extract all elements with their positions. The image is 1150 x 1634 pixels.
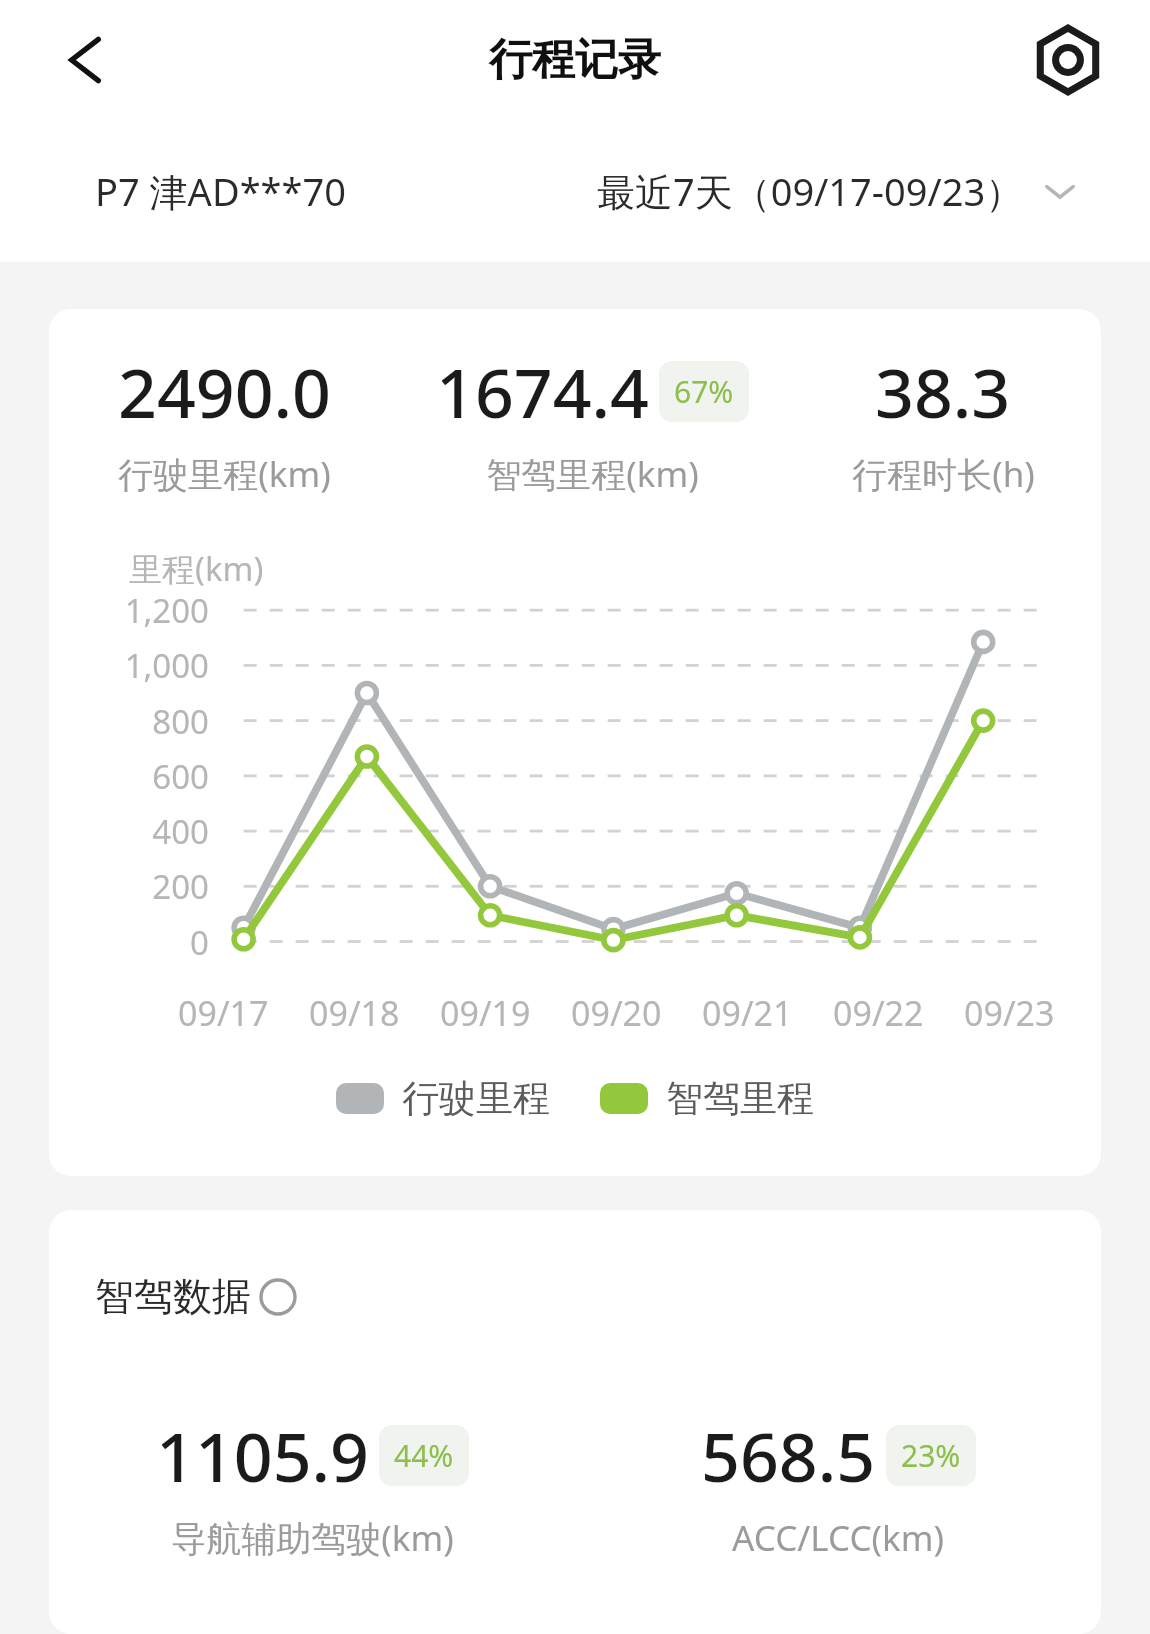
staticText: 行程时长(h): [852, 450, 1035, 498]
staticText: 1674.4: [436, 345, 649, 438]
staticText: 智驾里程: [666, 1075, 814, 1122]
staticText: 400: [49, 809, 209, 854]
staticText: 09/21: [702, 990, 793, 1036]
button[interactable]: 智驾数据: [95, 1272, 297, 1321]
staticText: 09/17: [178, 990, 269, 1036]
staticText: 0: [49, 920, 209, 965]
staticText: 67%: [674, 371, 734, 412]
staticText: 1,000: [49, 643, 209, 688]
other: Info: [259, 1278, 297, 1316]
staticText: 行程记录: [489, 33, 661, 87]
staticText: 200: [49, 864, 209, 909]
staticText: 09/19: [440, 990, 531, 1036]
staticText: P7 津AD***70: [95, 165, 346, 217]
staticText: 600: [49, 754, 209, 799]
staticText: 行驶里程(km): [118, 450, 331, 498]
staticText: 568.5: [701, 1409, 876, 1502]
staticText: 1105.9: [156, 1409, 369, 1502]
staticText: 里程(km): [129, 546, 264, 591]
staticText: 智驾里程(km): [486, 450, 699, 498]
staticText: 1,200: [49, 588, 209, 633]
staticText: 800: [49, 699, 209, 744]
staticText: 2490.0: [118, 345, 331, 438]
staticText: 最近7天（09/17-09/23）: [597, 165, 1024, 217]
staticText: 导航辅助驾驶(km): [171, 1514, 454, 1562]
staticText: 09/20: [571, 990, 662, 1036]
staticText: 09/18: [309, 990, 400, 1036]
staticText: 行驶里程: [402, 1075, 550, 1122]
staticText: 09/22: [833, 990, 924, 1036]
staticText: 23%: [901, 1435, 961, 1476]
staticText: 44%: [394, 1435, 454, 1476]
staticText: ACC/LCC(km): [732, 1514, 944, 1562]
staticText: 智驾数据: [95, 1272, 251, 1321]
button[interactable]: Back: [48, 23, 122, 97]
button[interactable]: Settings: [1028, 20, 1108, 100]
button[interactable]: 最近7天（09/17-09/23）: [597, 165, 1082, 217]
staticText: 09/23: [964, 990, 1055, 1036]
staticText: 38.3: [875, 345, 1011, 438]
